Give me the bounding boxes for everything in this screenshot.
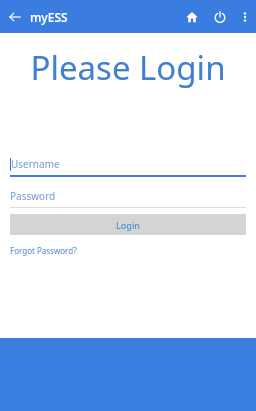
- button[interactable]: More options: [234, 0, 256, 33]
- button[interactable]: Login: [10, 214, 246, 235]
- button[interactable]: Username: [10, 157, 246, 177]
- staticText: Forgot Password?: [10, 245, 77, 256]
- staticText: Login: [116, 219, 140, 231]
- button[interactable]: Back: [0, 0, 30, 33]
- staticText: Please Login: [30, 45, 226, 90]
- staticText: myESS: [30, 9, 68, 25]
- button[interactable]: Forgot Password?: [10, 244, 77, 257]
- button[interactable]: Password: [10, 189, 246, 208]
- staticText: Password: [10, 189, 56, 203]
- button[interactable]: Logout: [206, 0, 234, 33]
- button[interactable]: Home: [178, 0, 206, 33]
- staticText: Username: [11, 157, 60, 171]
